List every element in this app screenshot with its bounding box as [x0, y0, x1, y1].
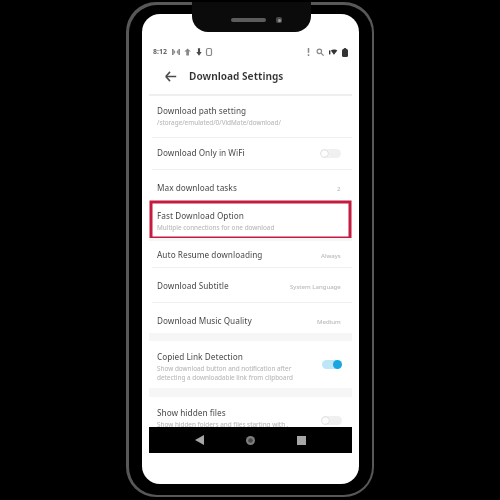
staticText: Multiple connections for one download — [157, 223, 275, 232]
staticText: Show hidden folders and files starting w… — [157, 420, 289, 429]
staticText: Download path setting — [157, 105, 247, 116]
staticText: Show download button and notification af… — [157, 364, 294, 382]
staticText: Show hidden files — [157, 407, 226, 418]
button[interactable]: Home — [241, 431, 259, 449]
button[interactable]: Download Only in WiFi — [149, 140, 352, 165]
staticText: Fast Download Option — [157, 210, 244, 221]
button[interactable]: Download Subtitle — [149, 273, 352, 298]
button[interactable]: Turn on — [320, 148, 341, 158]
button[interactable]: Recent apps — [292, 431, 310, 449]
staticText: Download Music Quality — [157, 315, 317, 326]
staticText: Copied Link Detection — [157, 351, 243, 362]
button[interactable]: Back — [190, 431, 208, 449]
button[interactable]: Download Music Quality — [149, 308, 352, 333]
staticText: Always — [321, 251, 341, 259]
button[interactable]: Turn on — [321, 415, 342, 425]
staticText: Auto Resume downloading — [157, 249, 321, 260]
staticText: 8:12 — [153, 47, 167, 57]
button[interactable]: Back — [160, 65, 182, 87]
staticText: Download Only in WiFi — [157, 147, 320, 158]
button[interactable]: Turn off — [321, 359, 342, 369]
button[interactable]: Fast Download Option — [149, 204, 352, 238]
button[interactable]: Download path setting — [149, 99, 352, 133]
staticText: Medium — [317, 317, 341, 325]
button[interactable]: Auto Resume downloading — [149, 242, 352, 267]
button[interactable]: Copied Link Detection — [149, 344, 352, 386]
staticText: Download Subtitle — [157, 280, 290, 291]
staticText: 2 — [337, 184, 341, 192]
staticText: System Language — [290, 282, 341, 290]
staticText: Max download tasks — [157, 182, 337, 193]
button[interactable]: Max download tasks — [149, 175, 352, 200]
staticText: Download Settings — [189, 69, 284, 83]
button[interactable]: Show hidden files — [149, 400, 352, 442]
staticText: /storage/emulated/0/VidMate/download/ — [157, 118, 281, 127]
